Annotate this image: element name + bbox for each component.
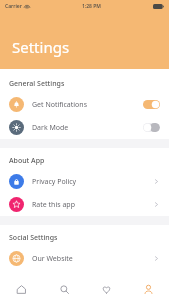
- button[interactable]: Dark Mode: [0, 116, 169, 139]
- button[interactable]: On: [143, 100, 160, 109]
- staticText: Settings: [12, 37, 70, 57]
- button[interactable]: Our Website: [0, 247, 169, 270]
- button[interactable]: Get Notifications: [0, 93, 169, 116]
- button[interactable]: Privacy Policy: [0, 170, 169, 193]
- staticText: 1:28 PM: [82, 3, 101, 10]
- staticText: Our Website: [32, 254, 73, 264]
- staticText: Get Notifications: [32, 100, 88, 110]
- staticText: Rate this app: [32, 200, 75, 210]
- button[interactable]: Search: [43, 278, 85, 300]
- button[interactable]: Favorites: [85, 278, 127, 300]
- button[interactable]: Home: [0, 278, 43, 300]
- button[interactable]: Rate this app: [0, 193, 169, 216]
- button[interactable]: Profile: [127, 278, 169, 300]
- staticText: Dark Mode: [32, 123, 69, 133]
- staticText: General Settings: [9, 79, 65, 89]
- button[interactable]: Off: [143, 123, 160, 132]
- staticText: Carrier: [5, 3, 22, 10]
- staticText: Social Settings: [9, 233, 58, 243]
- staticText: Privacy Policy: [32, 177, 77, 187]
- staticText: About App: [9, 156, 45, 166]
